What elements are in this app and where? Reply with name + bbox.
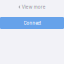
button[interactable]: View more: [0, 4, 64, 10]
staticText: View more: [22, 4, 46, 10]
staticText: Connect: [23, 20, 40, 26]
button[interactable]: Connect: [0, 17, 64, 29]
